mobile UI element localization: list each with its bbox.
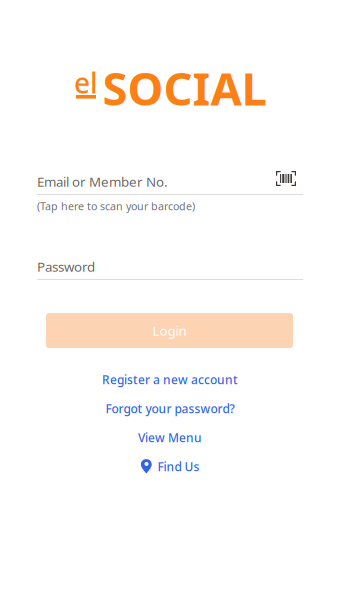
button[interactable]: View Menu	[37, 423, 303, 452]
button[interactable]: Login	[46, 313, 293, 348]
staticText: SOCIAL	[102, 58, 266, 118]
staticText: Register a new account	[102, 371, 238, 387]
button[interactable]: Password	[37, 254, 303, 280]
staticText: (Tap here to scan your barcode)	[37, 199, 195, 213]
button[interactable]: Find Us	[37, 452, 303, 481]
staticText: el	[74, 64, 98, 101]
staticText: View Menu	[138, 429, 202, 445]
button[interactable]: Forgot your password?	[37, 394, 303, 423]
button[interactable]: Email or Member No.	[37, 169, 303, 213]
staticText: Find Us	[157, 458, 199, 474]
staticText: Forgot your password?	[105, 400, 234, 416]
staticText: Email or Member No.	[37, 173, 168, 190]
button[interactable]: Register a new account	[37, 365, 303, 394]
staticText: Password	[37, 258, 95, 275]
staticText: Login	[152, 322, 186, 339]
